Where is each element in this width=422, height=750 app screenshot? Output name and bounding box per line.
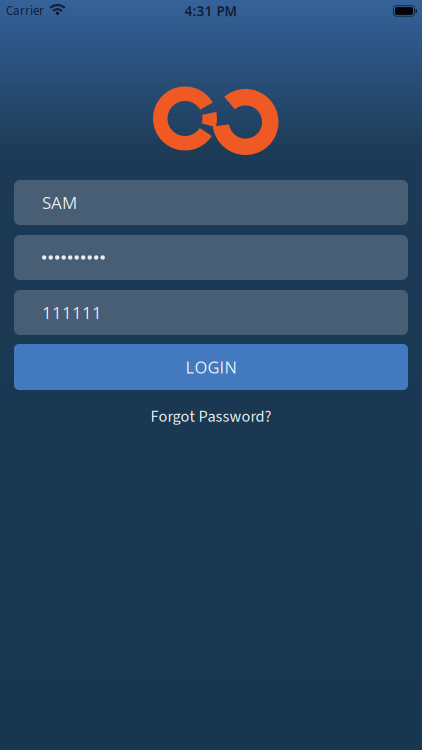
button[interactable]: SAM [0, 180, 422, 225]
staticText: LOGIN [185, 356, 236, 378]
button[interactable]: 111111 [0, 290, 422, 335]
button[interactable]: Password [0, 235, 422, 280]
staticText: 111111 [42, 301, 102, 324]
staticText: Carrier [6, 2, 44, 20]
staticText: SAM [42, 191, 77, 214]
staticText: Forgot Password? [150, 405, 271, 428]
button[interactable]: Forgot Password? [150, 405, 271, 428]
button[interactable]: LOGIN [0, 344, 422, 390]
staticText: 4:31 PM [184, 2, 237, 20]
